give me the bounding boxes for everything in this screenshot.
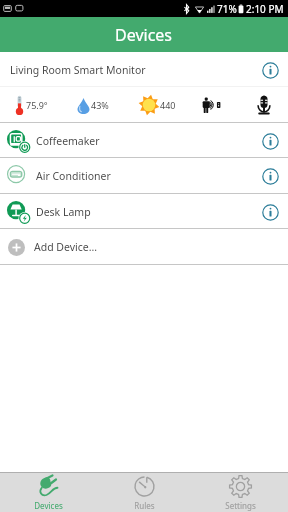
staticText: Devices [115,24,173,46]
button[interactable]: Info [258,200,282,224]
button[interactable]: Rules [96,473,192,512]
button[interactable]: Devices [0,473,96,512]
button[interactable]: 75.9° [0,87,288,123]
staticText: Coffeemaker [36,134,100,148]
staticText: 2:10 PM [246,2,284,16]
staticText: Desk Lamp [36,205,91,219]
button[interactable]: Info [258,58,282,82]
button[interactable]: Settings [192,473,288,512]
staticText: Devices [34,500,63,511]
staticText: 75.9° [26,99,48,111]
staticText: Air Conditioner [36,169,111,183]
button[interactable]: Desk Lamp [0,194,288,229]
button[interactable]: Info [258,129,282,153]
button[interactable]: Air Conditioner [0,158,288,194]
button[interactable]: Living Room Smart Monitor [0,52,288,87]
staticText: 440 [160,99,176,111]
staticText: 43% [91,99,109,111]
button[interactable]: Info [258,164,282,188]
staticText: Settings [225,500,256,511]
button[interactable]: Coffeemaker [0,123,288,158]
staticText: Rules [134,500,155,511]
staticText: Living Room Smart Monitor [10,63,146,77]
staticText: Add Device... [34,240,98,254]
button[interactable]: Add Device... [0,229,288,265]
staticText: 71% [217,2,237,16]
